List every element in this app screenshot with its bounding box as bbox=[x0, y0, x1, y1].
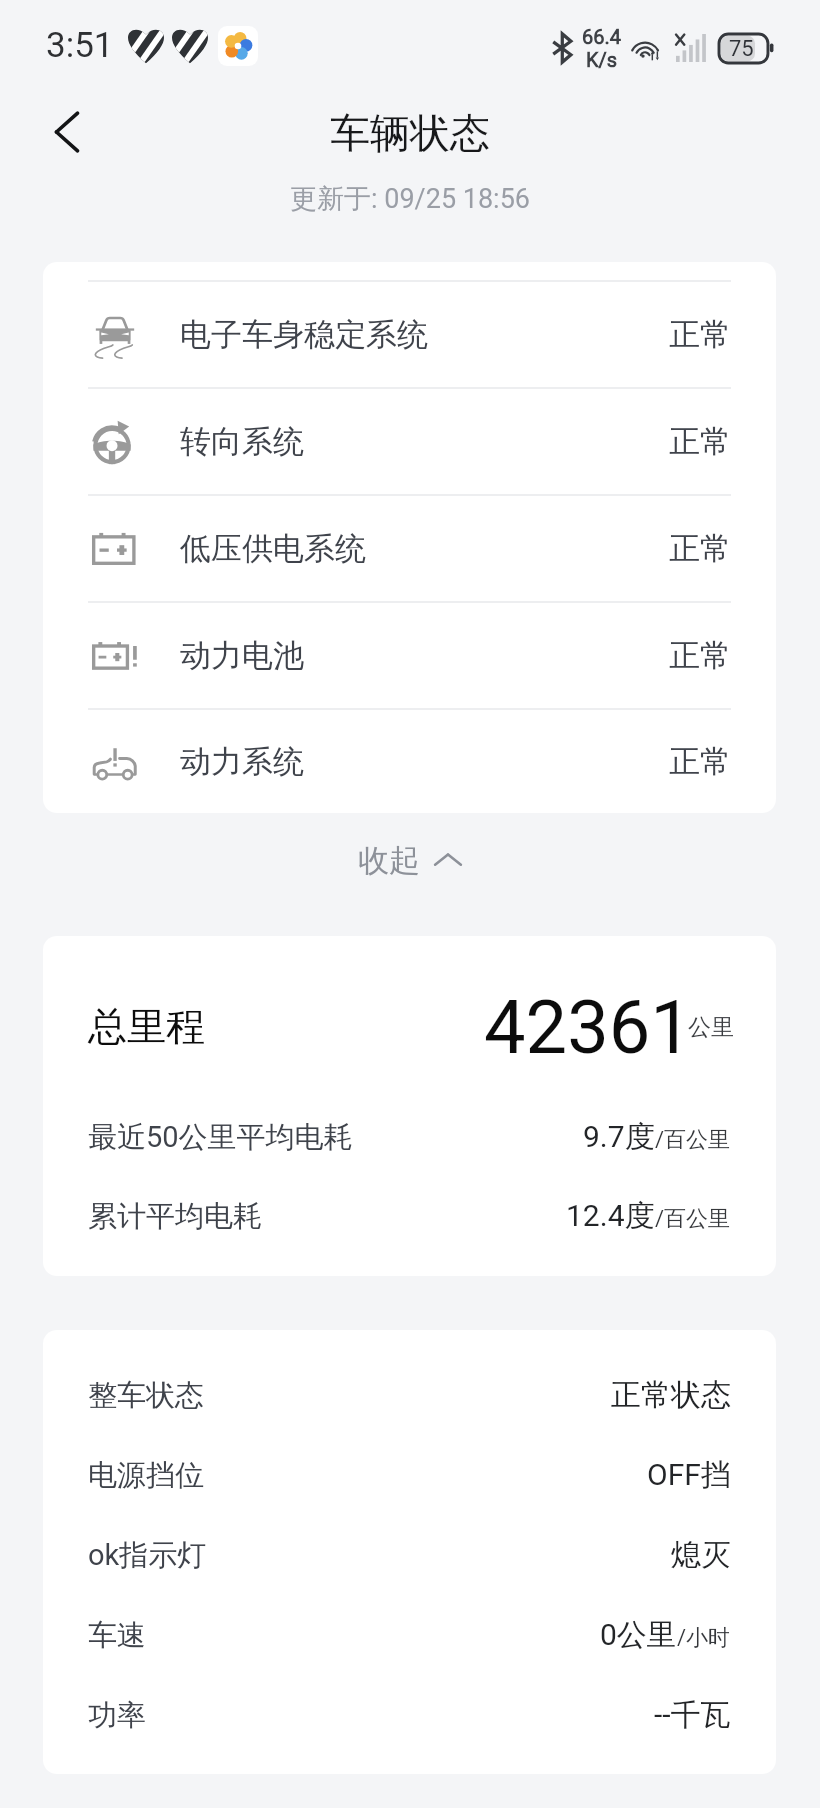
staticText: 整车状态 bbox=[88, 1377, 204, 1414]
staticText: --千瓦 bbox=[654, 1696, 731, 1734]
staticText: 正常 bbox=[669, 422, 731, 461]
staticText: 正常 bbox=[669, 636, 731, 675]
staticText: 最近50公里平均电耗 bbox=[88, 1119, 353, 1156]
staticText: ok指示灯 bbox=[88, 1537, 207, 1574]
button[interactable]: 收起 bbox=[328, 833, 492, 887]
button[interactable]: Back bbox=[30, 95, 104, 169]
staticText: 累计平均电耗 bbox=[88, 1198, 262, 1235]
staticText: 正常 bbox=[669, 529, 731, 568]
staticText: 动力电池 bbox=[180, 636, 304, 675]
button[interactable]: 动力电池 bbox=[43, 603, 776, 708]
staticText: 66.4 bbox=[582, 25, 621, 48]
staticText: 12.4度 bbox=[566, 1197, 655, 1235]
button[interactable]: 电子车身稳定系统 bbox=[43, 282, 776, 387]
staticText: /小时 bbox=[677, 1624, 731, 1652]
staticText: 正常 bbox=[669, 742, 731, 781]
staticText: 动力系统 bbox=[180, 742, 304, 781]
staticText: 车速 bbox=[88, 1617, 146, 1654]
staticText: 车辆状态 bbox=[330, 108, 490, 158]
staticText: OFF挡 bbox=[647, 1456, 731, 1494]
staticText: 低压供电系统 bbox=[180, 529, 366, 568]
staticText: K/s bbox=[586, 48, 618, 71]
staticText: /百公里 bbox=[655, 1126, 731, 1154]
staticText: 熄灭 bbox=[671, 1536, 731, 1574]
staticText: 收起 bbox=[358, 841, 420, 879]
staticText: 电子车身稳定系统 bbox=[180, 315, 428, 354]
button[interactable]: 低压供电系统 bbox=[43, 496, 776, 601]
staticText: /百公里 bbox=[655, 1205, 731, 1233]
staticText: 公里 bbox=[688, 1013, 734, 1042]
staticText: 电源挡位 bbox=[88, 1457, 204, 1494]
staticText: 更新于: 09/25 18:56 bbox=[290, 182, 531, 216]
staticText: 正常 bbox=[669, 315, 731, 354]
staticText: 总里程 bbox=[88, 1002, 205, 1051]
staticText: 42361 bbox=[484, 984, 692, 1071]
staticText: 75 bbox=[729, 36, 754, 62]
staticText: 9.7度 bbox=[583, 1118, 655, 1156]
button[interactable]: 动力系统 bbox=[43, 710, 776, 813]
staticText: 转向系统 bbox=[180, 422, 304, 461]
staticText: 功率 bbox=[88, 1697, 146, 1734]
staticText: 正常状态 bbox=[611, 1376, 731, 1414]
staticText: 0公里 bbox=[600, 1616, 677, 1654]
button[interactable]: 转向系统 bbox=[43, 389, 776, 494]
staticText: 3:51 bbox=[46, 25, 114, 66]
